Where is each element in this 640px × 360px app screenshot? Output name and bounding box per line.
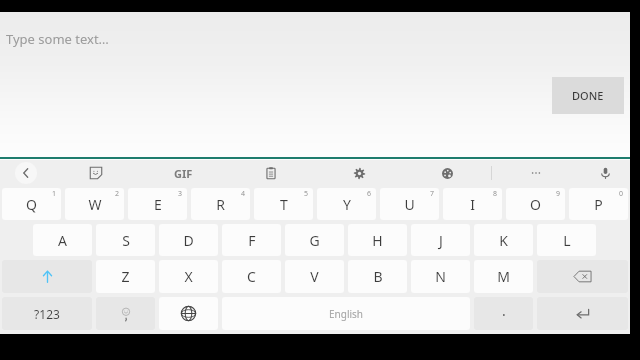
button[interactable]: G bbox=[285, 224, 344, 256]
button[interactable]: N bbox=[411, 260, 470, 293]
button[interactable]: P bbox=[569, 188, 628, 220]
button[interactable]: M bbox=[474, 260, 533, 293]
staticText: F bbox=[248, 231, 256, 250]
staticText: 3 bbox=[178, 189, 183, 199]
staticText: J bbox=[439, 231, 443, 250]
button[interactable]: F bbox=[222, 224, 281, 256]
staticText: Z bbox=[121, 267, 130, 286]
button[interactable]: I bbox=[443, 188, 502, 220]
button[interactable]: Clipboard bbox=[227, 160, 315, 186]
button[interactable]: Stickers bbox=[52, 160, 139, 186]
button[interactable]: O bbox=[506, 188, 565, 220]
button[interactable]: Z bbox=[96, 260, 155, 293]
button[interactable]: V bbox=[285, 260, 344, 293]
staticText: P bbox=[594, 195, 603, 214]
staticText: DONE bbox=[572, 88, 604, 103]
staticText: 4 bbox=[241, 189, 246, 199]
staticText: 2 bbox=[115, 189, 120, 199]
button[interactable]: L bbox=[537, 224, 596, 256]
button[interactable]: Enter bbox=[537, 297, 628, 330]
staticText: English bbox=[329, 307, 364, 321]
button[interactable]: Emoji and comma bbox=[96, 297, 155, 330]
staticText: 7 bbox=[430, 189, 435, 199]
button[interactable]: Voice input bbox=[580, 160, 630, 186]
button[interactable]: . bbox=[474, 297, 533, 330]
button[interactable]: K bbox=[474, 224, 533, 256]
button[interactable]: Settings bbox=[315, 160, 403, 186]
staticText: 8 bbox=[493, 189, 498, 199]
button[interactable]: B bbox=[348, 260, 407, 293]
staticText: V bbox=[310, 267, 319, 286]
button[interactable]: Y bbox=[317, 188, 376, 220]
staticText: 0 bbox=[619, 189, 624, 199]
button[interactable]: H bbox=[348, 224, 407, 256]
staticText: A bbox=[58, 231, 67, 250]
staticText: X bbox=[184, 267, 193, 286]
button[interactable]: X bbox=[159, 260, 218, 293]
button[interactable]: Change keyboard language bbox=[159, 297, 218, 330]
staticText: 1 bbox=[52, 189, 57, 199]
staticText: I bbox=[470, 195, 475, 214]
staticText: W bbox=[88, 195, 102, 214]
staticText: U bbox=[404, 195, 415, 214]
staticText: D bbox=[183, 231, 194, 250]
staticText: 9 bbox=[556, 189, 561, 199]
staticText: H bbox=[372, 231, 383, 250]
staticText: 5 bbox=[304, 189, 309, 199]
button[interactable]: E bbox=[128, 188, 187, 220]
button[interactable]: Shift bbox=[2, 260, 92, 293]
staticText: M bbox=[497, 267, 510, 286]
staticText: T bbox=[280, 195, 288, 214]
staticText: S bbox=[122, 231, 130, 250]
staticText: K bbox=[499, 231, 508, 250]
staticText: N bbox=[435, 267, 446, 286]
staticText: Y bbox=[343, 195, 351, 214]
staticText: G bbox=[309, 231, 320, 250]
staticText: 6 bbox=[367, 189, 372, 199]
staticText: O bbox=[530, 195, 541, 214]
staticText: GIF bbox=[174, 166, 193, 181]
button[interactable]: C bbox=[222, 260, 281, 293]
staticText: C bbox=[247, 267, 256, 286]
button[interactable]: More options bbox=[492, 160, 580, 186]
button[interactable]: W bbox=[65, 188, 124, 220]
button[interactable]: J bbox=[411, 224, 470, 256]
button[interactable]: ?123 bbox=[2, 297, 92, 330]
staticText: B bbox=[373, 267, 383, 286]
button[interactable]: Theme bbox=[403, 160, 491, 186]
staticText: E bbox=[154, 195, 162, 214]
staticText: ?123 bbox=[34, 306, 60, 322]
staticText: Q bbox=[26, 195, 37, 214]
staticText: L bbox=[563, 231, 571, 250]
button[interactable]: GIF bbox=[139, 160, 227, 186]
button[interactable]: U bbox=[380, 188, 439, 220]
button[interactable]: Back bbox=[0, 160, 52, 186]
button[interactable]: DONE bbox=[552, 77, 624, 114]
button[interactable]: Q bbox=[2, 188, 61, 220]
button[interactable]: Type some text… bbox=[0, 12, 630, 157]
button[interactable]: English bbox=[222, 297, 470, 330]
staticText: R bbox=[216, 195, 225, 214]
staticText: Type some text… bbox=[6, 30, 109, 48]
button[interactable]: S bbox=[96, 224, 155, 256]
staticText: . bbox=[502, 301, 506, 320]
button[interactable]: Backspace bbox=[537, 260, 628, 293]
button[interactable]: T bbox=[254, 188, 313, 220]
button[interactable]: A bbox=[33, 224, 92, 256]
button[interactable]: R bbox=[191, 188, 250, 220]
button[interactable]: D bbox=[159, 224, 218, 256]
